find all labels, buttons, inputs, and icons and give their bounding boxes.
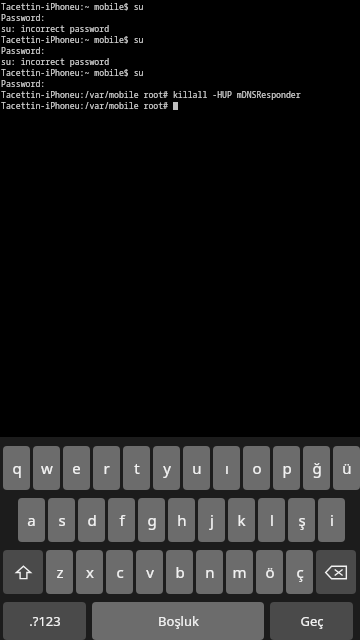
staticText: n — [205, 562, 215, 582]
button[interactable]: o — [243, 446, 270, 490]
button[interactable]: ö — [256, 550, 283, 594]
staticText: .?123 — [29, 612, 61, 630]
button[interactable]: s — [48, 498, 75, 542]
button[interactable]: x — [76, 550, 103, 594]
staticText: h — [177, 510, 187, 530]
button[interactable]: Shift — [3, 550, 43, 594]
button[interactable]: k — [228, 498, 255, 542]
staticText: c — [116, 562, 124, 582]
button[interactable]: Geç — [270, 602, 353, 640]
button[interactable]: n — [196, 550, 223, 594]
button[interactable]: ç — [286, 550, 313, 594]
button[interactable]: ğ — [303, 446, 330, 490]
staticText: b — [175, 562, 185, 582]
staticText: ğ — [312, 458, 322, 478]
staticText: ö — [265, 562, 275, 582]
staticText: Password: — [1, 45, 46, 56]
staticText: u — [192, 458, 202, 478]
staticText: Boşluk — [158, 612, 199, 630]
staticText: ş — [298, 510, 306, 530]
staticText: q — [12, 458, 22, 478]
staticText: m — [232, 562, 247, 582]
staticText: p — [282, 458, 292, 478]
button[interactable]: p — [273, 446, 300, 490]
staticText: w — [41, 458, 53, 478]
staticText: i — [330, 510, 334, 530]
button[interactable]: b — [166, 550, 193, 594]
button[interactable]: a — [18, 498, 45, 542]
staticText: Password: — [1, 78, 46, 89]
button[interactable]: w — [33, 446, 60, 490]
button[interactable]: f — [108, 498, 135, 542]
staticText: Tacettin-iPhoneu:~ mobile$ su — [1, 34, 144, 45]
button[interactable]: h — [168, 498, 195, 542]
button[interactable]: u — [183, 446, 210, 490]
staticText: z — [56, 562, 64, 582]
button[interactable]: d — [78, 498, 105, 542]
button[interactable]: c — [106, 550, 133, 594]
button[interactable]: ş — [288, 498, 315, 542]
staticText: Geç — [300, 612, 324, 630]
button[interactable]: r — [93, 446, 120, 490]
button[interactable]: q — [3, 446, 30, 490]
staticText: r — [103, 458, 110, 478]
button[interactable]: .?123 — [3, 602, 86, 640]
staticText: k — [237, 510, 246, 530]
staticText: d — [87, 510, 97, 530]
staticText: Tacettin-iPhoneu:~ mobile$ su — [1, 67, 144, 78]
staticText: g — [147, 510, 157, 530]
button[interactable]: z — [46, 550, 73, 594]
staticText: l — [270, 510, 274, 530]
staticText: e — [72, 458, 81, 478]
button[interactable]: ı — [213, 446, 240, 490]
staticText: t — [134, 458, 140, 478]
staticText: Tacettin-iPhoneu:/var/mobile root# — [1, 100, 173, 111]
staticText: ç — [296, 562, 304, 582]
staticText: Tacettin-iPhoneu:/var/mobile root# killa… — [1, 89, 301, 100]
button[interactable]: Boşluk — [92, 602, 264, 640]
staticText: y — [163, 458, 171, 478]
button[interactable]: j — [198, 498, 225, 542]
button[interactable]: g — [138, 498, 165, 542]
button[interactable]: e — [63, 446, 90, 490]
button[interactable]: i — [318, 498, 345, 542]
staticText: s — [58, 510, 66, 530]
button[interactable]: m — [226, 550, 253, 594]
button[interactable]: t — [123, 446, 150, 490]
staticText: ı — [225, 458, 229, 478]
button[interactable]: Backspace — [316, 550, 356, 594]
button[interactable]: l — [258, 498, 285, 542]
staticText: Tacettin-iPhoneu:~ mobile$ su — [1, 1, 144, 12]
staticText: su: incorrect password — [1, 56, 110, 67]
staticText: su: incorrect password — [1, 23, 110, 34]
button[interactable]: ü — [333, 446, 360, 490]
button[interactable]: y — [153, 446, 180, 490]
button[interactable]: v — [136, 550, 163, 594]
staticText: a — [27, 510, 36, 530]
staticText: v — [146, 562, 154, 582]
staticText: o — [252, 458, 262, 478]
staticText: Password: — [1, 12, 46, 23]
staticText: x — [86, 562, 94, 582]
staticText: f — [119, 510, 125, 530]
staticText: ü — [342, 458, 352, 478]
staticText: j — [210, 510, 214, 530]
